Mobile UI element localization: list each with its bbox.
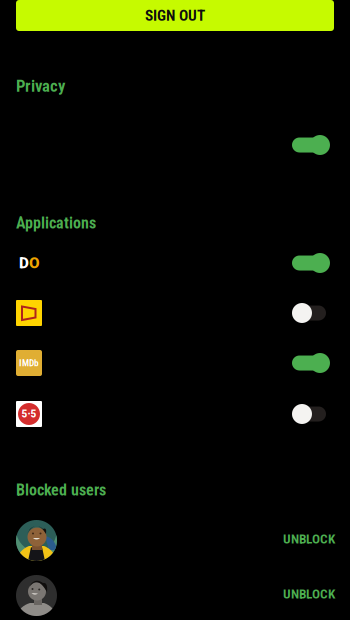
button[interactable]: Documents xyxy=(0,288,350,338)
button[interactable]: IMDb xyxy=(0,338,350,388)
staticText: Applications xyxy=(16,214,96,232)
button[interactable]: UNBLOCK xyxy=(0,567,350,620)
button[interactable]: Kinopoisk xyxy=(0,389,350,439)
staticText: Blocked users xyxy=(16,481,106,499)
staticText: UNBLOCK xyxy=(283,586,335,602)
staticText: IMDb xyxy=(19,357,39,368)
staticText: SIGN OUT xyxy=(145,6,205,24)
staticText: O xyxy=(29,254,40,272)
button[interactable]: DO xyxy=(0,238,350,288)
staticText: D xyxy=(19,254,29,272)
button[interactable]: UNBLOCK xyxy=(0,512,350,569)
button[interactable]: SIGN OUT xyxy=(16,0,334,31)
staticText: UNBLOCK xyxy=(283,531,335,547)
staticText: 5·5 xyxy=(21,408,36,420)
button[interactable]: Private account xyxy=(0,125,350,165)
staticText: Privacy xyxy=(16,76,65,96)
